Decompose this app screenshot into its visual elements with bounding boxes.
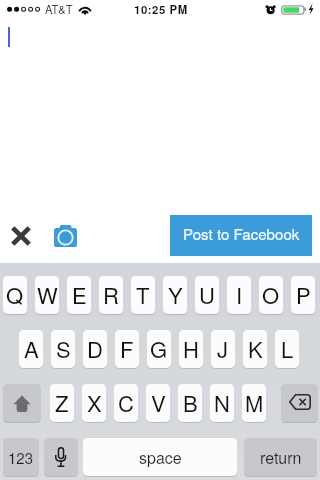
button[interactable]: D	[83, 330, 107, 368]
button[interactable]: Y	[163, 276, 187, 314]
button[interactable]: W	[35, 276, 59, 314]
staticText: O	[262, 279, 280, 311]
staticText: Y	[168, 279, 183, 311]
button[interactable]: Post to Facebook	[170, 215, 312, 256]
staticText: return	[260, 446, 302, 469]
staticText: V	[151, 387, 166, 419]
staticText: B	[183, 387, 198, 419]
staticText: 123	[8, 447, 34, 468]
staticText: E	[72, 279, 87, 311]
staticText: AT&T	[45, 1, 73, 17]
staticText: Q	[6, 279, 24, 311]
button[interactable]: M	[242, 384, 266, 422]
staticText: L	[281, 333, 294, 365]
staticText: N	[214, 387, 230, 419]
button[interactable]: return	[244, 438, 317, 476]
button[interactable]: R	[99, 276, 123, 314]
staticText: T	[136, 279, 150, 311]
staticText: U	[199, 279, 215, 311]
staticText: D	[87, 333, 103, 365]
staticText: Z	[55, 387, 69, 419]
button[interactable]: U	[195, 276, 219, 314]
staticText: 10:25 PM	[134, 1, 188, 17]
staticText: X	[87, 387, 102, 419]
staticText: A	[24, 333, 39, 365]
staticText: K	[248, 333, 263, 365]
button[interactable]: F	[115, 330, 139, 368]
button[interactable]: Camera	[49, 220, 81, 252]
staticText: S	[56, 333, 71, 365]
staticText: J	[217, 333, 229, 365]
button[interactable]: Dictation	[44, 438, 78, 476]
button[interactable]: Z	[50, 384, 74, 422]
button[interactable]: J	[211, 330, 235, 368]
button[interactable]: G	[147, 330, 171, 368]
staticText: space	[139, 446, 182, 469]
staticText: C	[118, 387, 134, 419]
button[interactable]: N	[210, 384, 234, 422]
button[interactable]: E	[67, 276, 91, 314]
staticText: W	[37, 279, 58, 311]
button[interactable]: A	[19, 330, 43, 368]
staticText: Post to Facebook	[183, 223, 300, 245]
button[interactable]: P	[291, 276, 315, 314]
button[interactable]: K	[243, 330, 267, 368]
staticText: F	[120, 333, 134, 365]
button[interactable]: S	[51, 330, 75, 368]
button[interactable]: Numbers	[3, 438, 39, 476]
staticText: I	[236, 279, 243, 311]
button[interactable]: Shift	[3, 384, 41, 422]
button[interactable]: L	[275, 330, 299, 368]
button[interactable]: C	[114, 384, 138, 422]
button[interactable]: H	[179, 330, 203, 368]
button[interactable]: Cancel	[5, 220, 37, 252]
button[interactable]: B	[178, 384, 202, 422]
staticText: R	[103, 279, 119, 311]
staticText: G	[150, 333, 168, 365]
button[interactable]: T	[131, 276, 155, 314]
button[interactable]: Backspace	[281, 384, 318, 422]
button[interactable]: V	[146, 384, 170, 422]
button[interactable]: space	[83, 438, 237, 476]
staticText: H	[183, 333, 199, 365]
staticText: P	[296, 279, 311, 311]
button[interactable]: O	[259, 276, 283, 314]
button[interactable]: X	[82, 384, 106, 422]
button[interactable]: I	[227, 276, 251, 314]
staticText: M	[245, 387, 264, 419]
button[interactable]: Q	[3, 276, 27, 314]
